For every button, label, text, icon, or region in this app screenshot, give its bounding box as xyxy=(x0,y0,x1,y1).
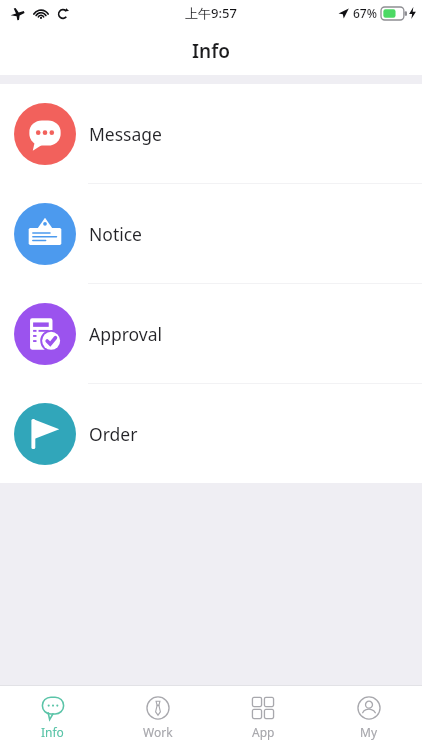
staticText: Approval xyxy=(89,322,163,346)
staticText: App xyxy=(252,724,275,740)
staticText: Order xyxy=(89,422,138,446)
staticText: Notice xyxy=(89,222,142,246)
staticText: Work xyxy=(143,724,173,740)
button[interactable]: Message xyxy=(0,84,422,184)
staticText: 上午9:57 xyxy=(185,4,237,22)
staticText: Info xyxy=(192,38,230,64)
button[interactable]: Info xyxy=(0,686,105,750)
button[interactable]: Work xyxy=(105,686,210,750)
button[interactable]: Notice xyxy=(0,184,422,284)
staticText: Info xyxy=(41,724,64,740)
staticText: Message xyxy=(89,122,162,146)
button[interactable]: My xyxy=(316,686,422,750)
staticText: My xyxy=(360,724,378,740)
staticText: 67% xyxy=(353,5,377,21)
button[interactable]: Order xyxy=(0,384,422,483)
button[interactable]: App xyxy=(210,686,316,750)
button[interactable]: Approval xyxy=(0,284,422,384)
